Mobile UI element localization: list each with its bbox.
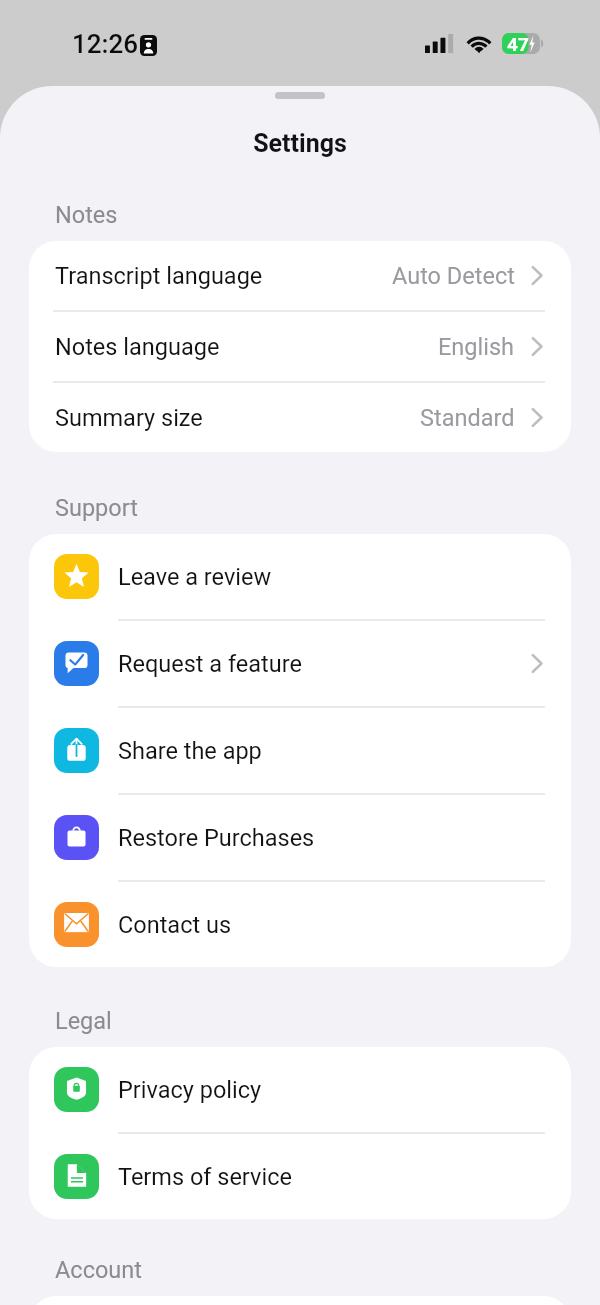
staticText: Share the app [118,737,262,765]
staticText: Leave a review [118,563,272,591]
staticText: Terms of service [118,1163,292,1191]
staticText: Privacy policy [118,1076,262,1104]
staticText: Auto Detect [392,262,515,290]
button[interactable]: Request a feature [29,621,571,708]
button[interactable]: Restore Purchases [29,795,571,882]
staticText: Notes [55,201,118,229]
staticText: 47 [507,33,529,53]
staticText: Standard [420,404,515,432]
staticText: Support [55,494,138,522]
staticText: Request a feature [118,650,302,678]
button[interactable]: Notes language [29,312,571,383]
button[interactable]: Terms of service [29,1134,571,1219]
staticText: Contact us [118,911,232,939]
staticText: English [438,333,515,361]
staticText: Settings [0,129,600,158]
button[interactable]: Share the app [29,708,571,795]
staticText: Transcript language [55,262,263,290]
staticText: Legal [55,1007,112,1035]
staticText: Summary size [55,404,203,432]
staticText: Account [55,1256,142,1284]
button[interactable]: Leave a review [29,534,571,621]
staticText: Restore Purchases [118,824,315,852]
staticText: 12:26 [72,29,139,59]
button[interactable]: Privacy policy [29,1047,571,1134]
button[interactable]: Contact us [29,882,571,967]
button[interactable]: Transcript language [29,241,571,312]
button[interactable]: Summary size [29,383,571,452]
staticText: Notes language [55,333,220,361]
